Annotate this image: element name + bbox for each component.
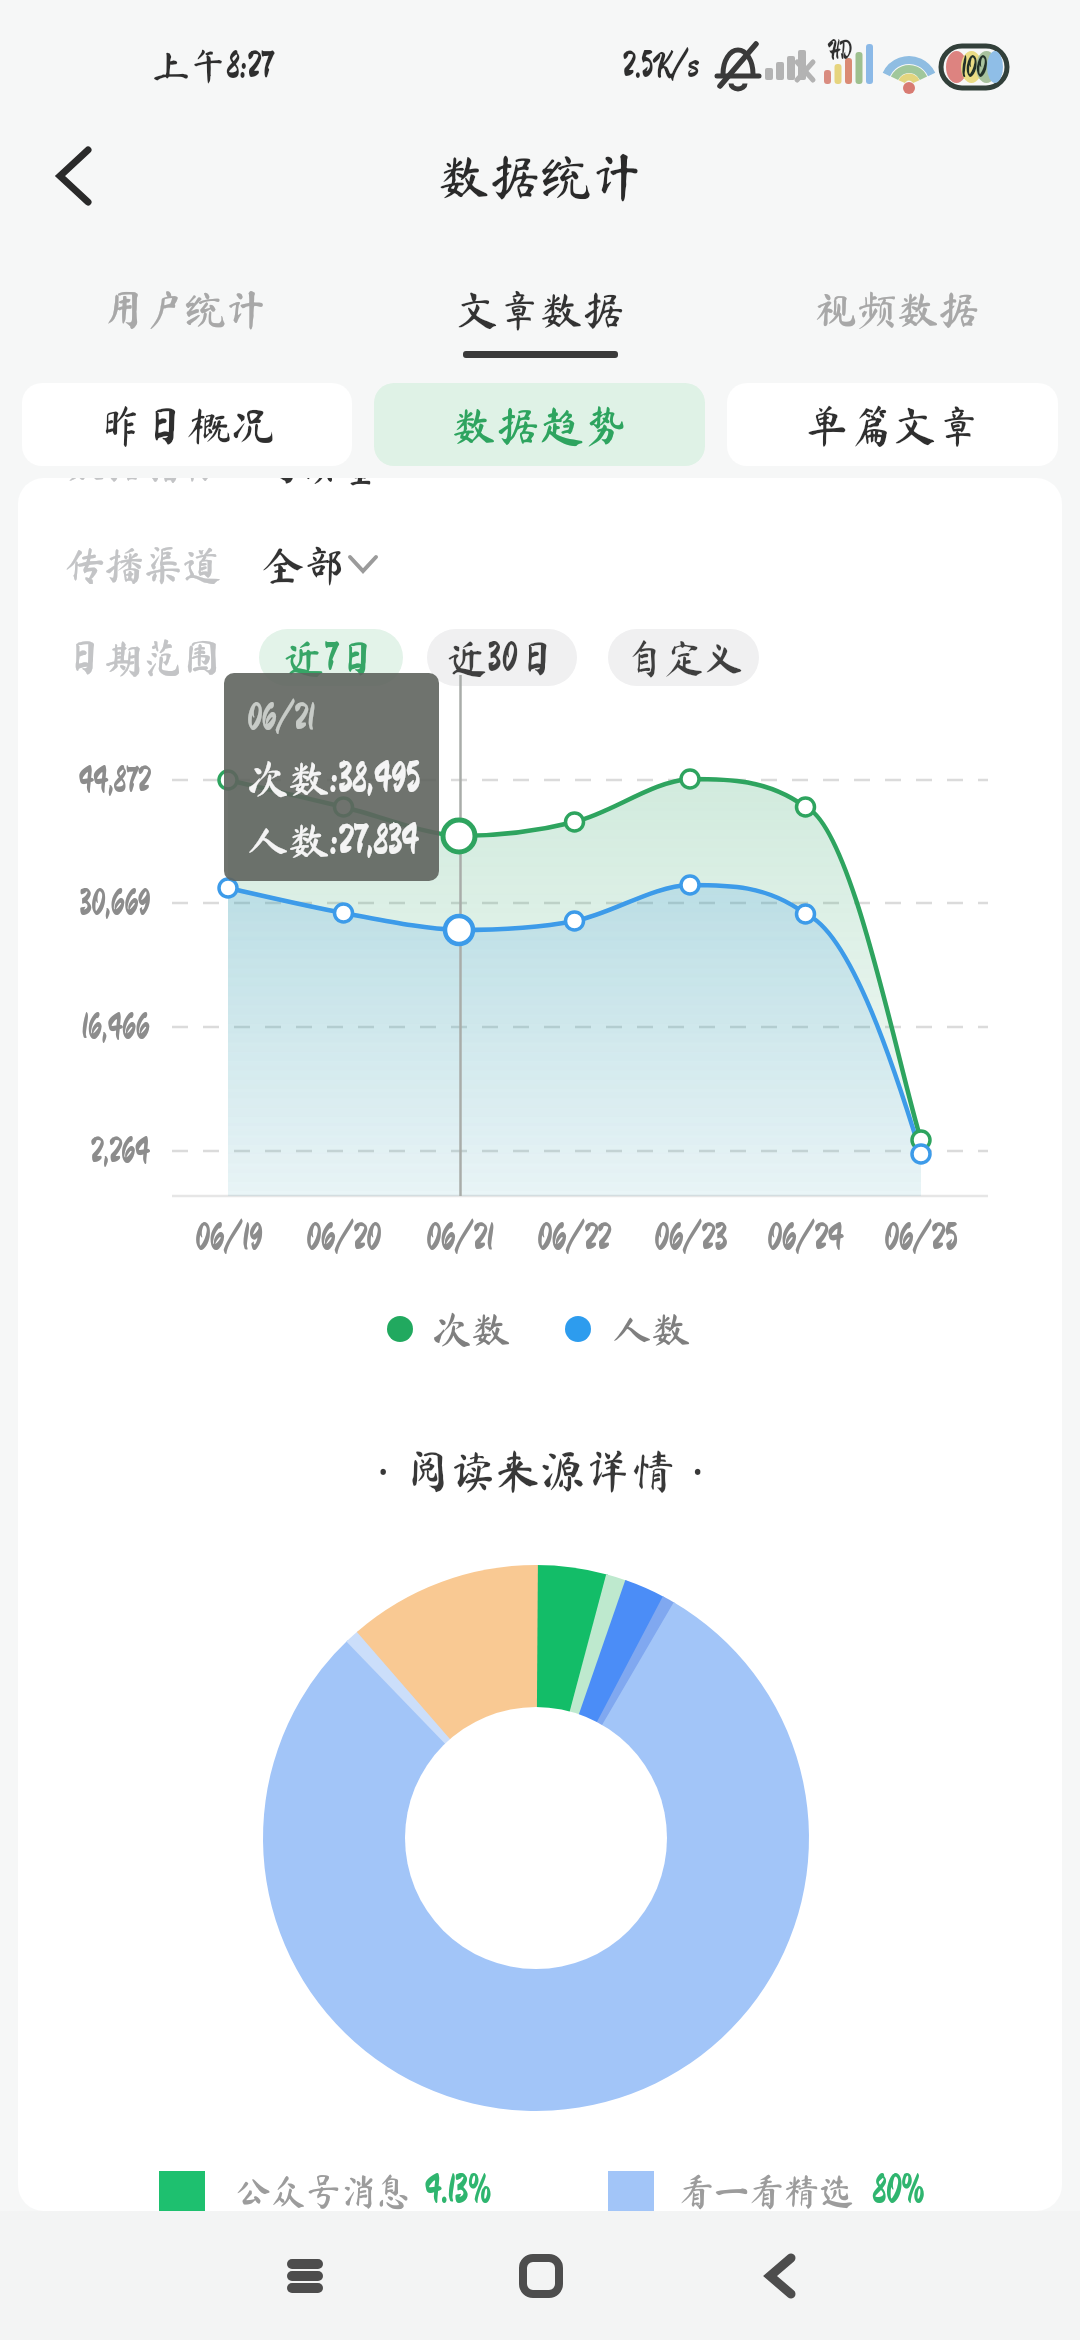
staticText: 人数 [612, 1309, 690, 1349]
staticText: 次数:38,495 [247, 757, 420, 799]
staticText: 昨日概况 [99, 403, 275, 447]
staticText: 80% [872, 2170, 924, 2210]
staticText: 自定义 [624, 638, 744, 678]
staticText: 06/24 [767, 1219, 843, 1257]
button[interactable]: 自定义 [608, 629, 759, 686]
staticText: 全部 [262, 544, 345, 586]
button[interactable]: 数据趋势 [374, 383, 705, 466]
staticText: 06/21 [247, 699, 314, 737]
staticText: 4.13% [424, 2170, 491, 2210]
button[interactable]: 近30日 [427, 629, 577, 686]
staticText: 2,264 [90, 1133, 150, 1169]
staticText: 06/25 [884, 1219, 958, 1257]
staticText: 公众号消息 [235, 2172, 410, 2209]
staticText: 数据统计 [438, 150, 643, 202]
staticText: 文章数据 [456, 288, 624, 331]
staticText: 06/22 [537, 1219, 611, 1257]
staticText: 次数 [432, 1309, 510, 1349]
staticText: 看一看精选 [678, 2172, 853, 2209]
button[interactable] [250, 530, 390, 600]
button[interactable]: 文章数据 [410, 269, 670, 349]
staticText: 06/23 [654, 1219, 727, 1257]
staticText: 数据指标 [65, 478, 221, 484]
button[interactable]: 视频数据 [767, 269, 1027, 349]
staticText: 上午8:27 [152, 47, 273, 85]
button[interactable] [48, 136, 128, 216]
staticText: 传播渠道 [65, 545, 221, 585]
staticText: · 阅读来源详情 · [377, 1439, 703, 1502]
staticText: 单篇文章 [805, 403, 981, 447]
button[interactable]: 近7日 [259, 629, 403, 686]
staticText: 数据趋势 [452, 403, 628, 447]
button[interactable]: 用户统计 [54, 269, 314, 349]
staticText: 30,669 [79, 885, 150, 921]
staticText: 近30日 [447, 638, 558, 678]
button[interactable]: 昨日概况 [22, 383, 352, 466]
staticText: 06/21 [426, 1219, 493, 1257]
button[interactable] [485, 2220, 595, 2330]
staticText: 近7日 [284, 638, 378, 678]
staticText: 视频数据 [815, 288, 980, 330]
staticText: 16,466 [81, 1009, 150, 1045]
staticText: 人数:27,834 [247, 819, 418, 861]
staticText: 日期范围 [65, 637, 221, 677]
staticText: 用户统计 [102, 288, 267, 330]
staticText: HD [828, 37, 852, 63]
button[interactable] [728, 2220, 838, 2330]
staticText: 06/19 [195, 1219, 262, 1257]
staticText: 2.5K/s [622, 47, 699, 83]
staticText: 100 [961, 53, 987, 81]
staticText: 44,872 [78, 762, 150, 798]
staticText: 阅读量 [258, 478, 382, 485]
button[interactable] [250, 2220, 360, 2330]
button[interactable]: 单篇文章 [727, 383, 1058, 466]
staticText: 06/20 [306, 1219, 381, 1257]
